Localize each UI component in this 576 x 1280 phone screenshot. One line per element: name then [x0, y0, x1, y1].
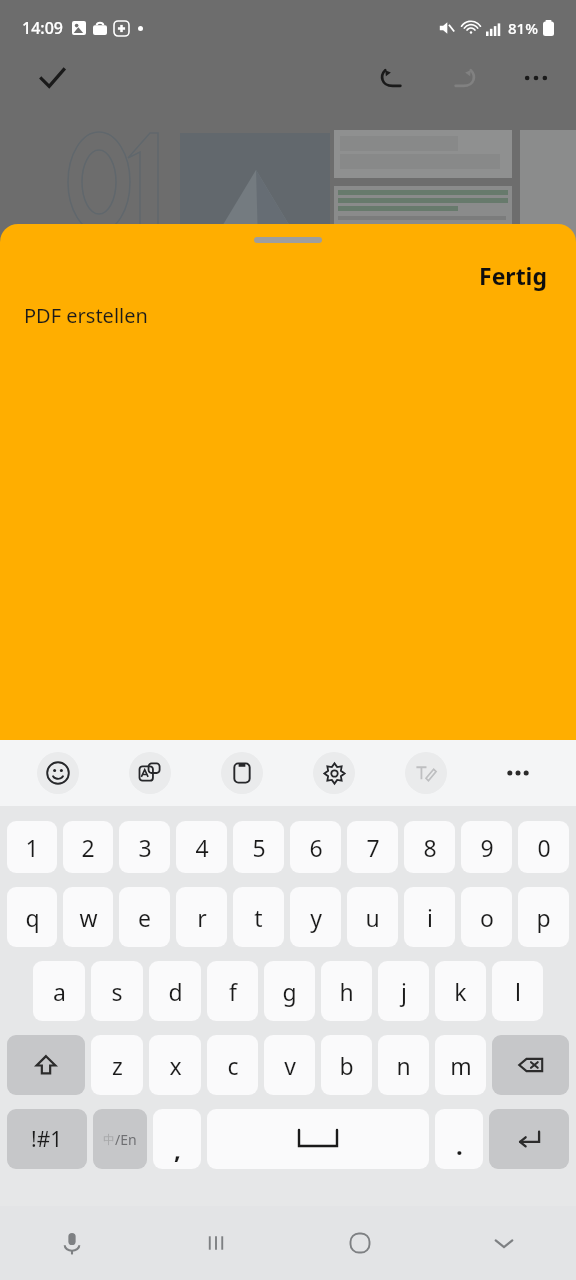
staticText: t: [254, 902, 263, 933]
button[interactable]: 5: [233, 821, 284, 873]
staticText: ,: [174, 1133, 181, 1166]
button[interactable]: More: [472, 740, 564, 806]
staticText: Fertig: [479, 260, 548, 291]
staticText: m: [450, 1050, 472, 1081]
button[interactable]: Undo: [370, 56, 414, 100]
button[interactable]: 4: [176, 821, 227, 873]
button[interactable]: e: [119, 887, 170, 947]
button[interactable]: y: [290, 887, 341, 947]
button[interactable]: z: [91, 1035, 143, 1095]
button[interactable]: Translate: [104, 740, 196, 806]
staticText: .: [456, 1129, 463, 1162]
staticText: v: [284, 1050, 296, 1081]
button[interactable]: s: [91, 961, 143, 1021]
staticText: c: [227, 1050, 239, 1081]
staticText: w: [79, 902, 98, 933]
staticText: !#1: [31, 1125, 63, 1154]
button[interactable]: c: [207, 1035, 258, 1095]
staticText: 8: [423, 832, 437, 863]
staticText: u: [365, 902, 380, 933]
button[interactable]: 2: [63, 821, 113, 873]
button[interactable]: Enter: [489, 1109, 569, 1169]
button[interactable]: k: [435, 961, 486, 1021]
button[interactable]: r: [176, 887, 227, 947]
button[interactable]: Handwriting: [380, 740, 472, 806]
button[interactable]: Done: [30, 56, 74, 100]
button[interactable]: i: [404, 887, 455, 947]
button[interactable]: 7: [347, 821, 398, 873]
button[interactable]: Voice input: [0, 1206, 144, 1280]
button[interactable]: v: [264, 1035, 315, 1095]
staticText: 6: [309, 832, 323, 863]
button[interactable]: m: [435, 1035, 486, 1095]
staticText: j: [401, 976, 407, 1007]
button[interactable]: Backspace: [492, 1035, 569, 1095]
button[interactable]: Settings: [288, 740, 380, 806]
staticText: 0: [537, 832, 551, 863]
staticText: x: [169, 1050, 182, 1081]
button[interactable]: t: [233, 887, 284, 947]
button[interactable]: l: [492, 961, 543, 1021]
button[interactable]: a: [33, 961, 85, 1021]
button[interactable]: p: [518, 887, 569, 947]
staticText: i: [427, 902, 433, 933]
button[interactable]: h: [321, 961, 372, 1021]
button[interactable]: !#1: [7, 1109, 87, 1169]
button[interactable]: d: [149, 961, 201, 1021]
button[interactable]: 3: [119, 821, 170, 873]
button[interactable]: 8: [404, 821, 455, 873]
button[interactable]: x: [149, 1035, 201, 1095]
staticText: 1: [25, 832, 39, 863]
staticText: a: [53, 976, 66, 1007]
button[interactable]: Shift: [7, 1035, 85, 1095]
staticText: 5: [252, 832, 266, 863]
button[interactable]: j: [378, 961, 429, 1021]
staticText: 2: [81, 832, 95, 863]
staticText: 7: [366, 832, 380, 863]
staticText: p: [536, 902, 551, 933]
button[interactable]: 1: [7, 821, 57, 873]
button[interactable]: 9: [461, 821, 512, 873]
button[interactable]: q: [7, 887, 57, 947]
button[interactable]: 0: [518, 821, 569, 873]
button[interactable]: Emoji: [12, 740, 104, 806]
staticText: s: [111, 976, 123, 1007]
button[interactable]: f: [207, 961, 258, 1021]
staticText: 3: [138, 832, 152, 863]
staticText: l: [515, 976, 521, 1007]
staticText: q: [25, 902, 40, 933]
button[interactable]: w: [63, 887, 113, 947]
button[interactable]: Redo: [442, 56, 486, 100]
button[interactable]: u: [347, 887, 398, 947]
staticText: d: [168, 976, 183, 1007]
staticText: h: [339, 976, 354, 1007]
button[interactable]: Recents: [144, 1206, 288, 1280]
button[interactable]: n: [378, 1035, 429, 1095]
button[interactable]: 6: [290, 821, 341, 873]
staticText: 81%: [508, 18, 538, 38]
button[interactable]: More options: [514, 56, 558, 100]
button[interactable]: o: [461, 887, 512, 947]
staticText: y: [310, 902, 322, 933]
button[interactable]: b: [321, 1035, 372, 1095]
staticText: 14:09: [22, 17, 63, 39]
staticText: g: [282, 976, 297, 1007]
button[interactable]: Clipboard: [196, 740, 288, 806]
button[interactable]: g: [264, 961, 315, 1021]
button[interactable]: comma: [153, 1109, 201, 1169]
staticText: r: [197, 902, 207, 933]
staticText: 9: [480, 832, 494, 863]
button[interactable]: Home: [288, 1206, 432, 1280]
staticText: b: [339, 1050, 354, 1081]
staticText: z: [112, 1050, 123, 1081]
staticText: /En: [115, 1130, 137, 1149]
button[interactable]: Hide keyboard: [432, 1206, 576, 1280]
staticText: PDF erstellen: [24, 302, 148, 329]
button[interactable]: Space: [207, 1109, 429, 1169]
staticText: o: [480, 902, 494, 933]
button[interactable]: 中: [93, 1109, 147, 1169]
button[interactable]: Fertig: [465, 252, 562, 299]
button[interactable]: period: [435, 1109, 483, 1169]
staticText: 中: [103, 1132, 115, 1147]
staticText: 4: [195, 832, 209, 863]
